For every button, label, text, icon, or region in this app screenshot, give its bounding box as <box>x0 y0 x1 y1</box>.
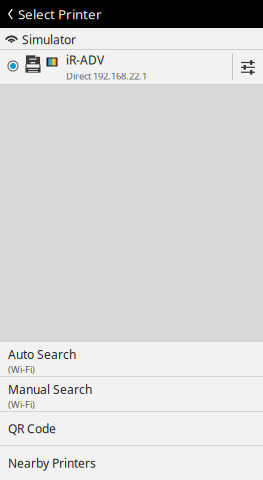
staticText: Nearby Printers <box>8 455 96 471</box>
staticText: Direct 192.168.22.1 <box>66 70 147 82</box>
button[interactable]: Manual Search <box>0 376 263 411</box>
staticText: Auto Search <box>8 346 76 362</box>
button[interactable]: QR Code <box>0 411 263 445</box>
button[interactable]: Select Printer <box>0 0 263 28</box>
staticText: Simulator <box>22 31 76 47</box>
staticText: iR-ADV <box>66 52 104 68</box>
staticText: (Wi-Fi) <box>8 398 35 411</box>
button[interactable]: Auto Search <box>0 341 263 376</box>
staticText: QR Code <box>8 420 56 436</box>
staticText: Select Printer <box>18 5 102 23</box>
staticText: (Wi-Fi) <box>8 363 35 376</box>
staticText: Manual Search <box>8 381 92 397</box>
button[interactable]: Nearby Printers <box>0 445 263 480</box>
button[interactable]: iR-ADV <box>0 49 263 85</box>
